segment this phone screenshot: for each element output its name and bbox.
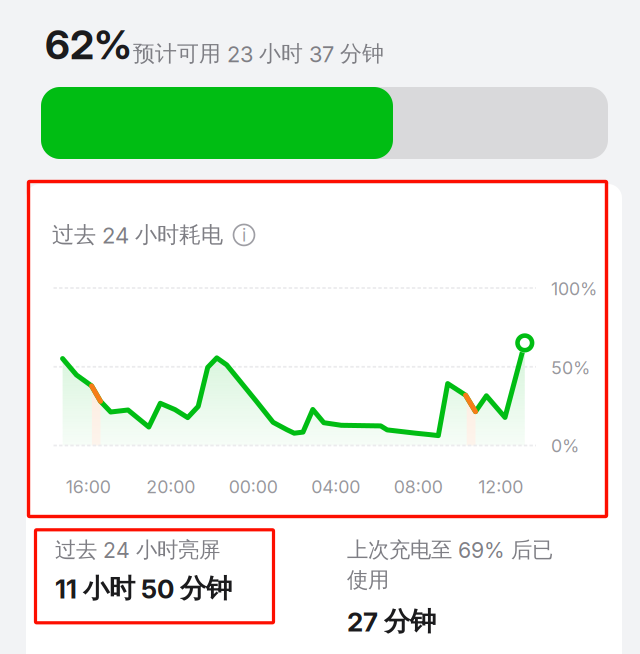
staticText: 27 分钟 [347,605,436,638]
staticText: 12:00 [478,476,523,497]
staticText: 20:00 [146,476,195,497]
staticText: 00:00 [229,476,278,497]
staticText: 16:00 [66,476,111,497]
staticText: i [242,224,246,246]
staticText: 08:00 [394,476,443,497]
staticText: 0% [551,435,579,456]
staticText: 62% [45,20,132,69]
staticText: 11 小时 50 分钟 [55,572,232,605]
staticText: 使用 [347,566,389,593]
staticText: 上次充电至 69% 后已 [347,536,553,563]
staticText: 04:00 [311,476,360,497]
staticText: 100% [551,278,597,299]
staticText: 过去 24 小时耗电 [52,221,223,249]
button[interactable]: About battery usage [233,224,255,246]
staticText: 过去 24 小时亮屏 [55,536,220,563]
staticText: 预计可用 23 小时 37 分钟 [133,40,384,67]
staticText: 50% [551,357,590,378]
